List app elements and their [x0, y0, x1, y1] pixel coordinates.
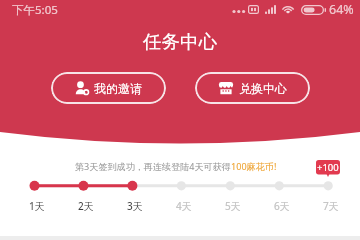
staticText: 5天 — [225, 199, 241, 213]
button[interactable]: 我的邀请 — [51, 72, 166, 104]
staticText: 任务中心 — [0, 30, 360, 53]
staticText: 7天 — [323, 199, 339, 213]
staticText: 下午5:05 — [12, 2, 58, 18]
staticText: 2天 — [78, 199, 94, 213]
staticText: 兑换中心 — [239, 81, 287, 96]
staticText: 4天 — [176, 199, 192, 213]
staticText: 6天 — [274, 199, 290, 213]
staticText: 100麻花币! — [231, 160, 277, 172]
staticText: +100 — [317, 161, 339, 174]
staticText: 第3天签到成功，再连续登陆4天可获得 — [75, 160, 231, 172]
button[interactable]: 兑换中心 — [195, 72, 310, 104]
staticText: 3天 — [127, 199, 143, 213]
staticText: 1天 — [29, 199, 45, 213]
staticText: 我的邀请 — [94, 81, 142, 96]
staticText: 64% — [329, 1, 354, 18]
